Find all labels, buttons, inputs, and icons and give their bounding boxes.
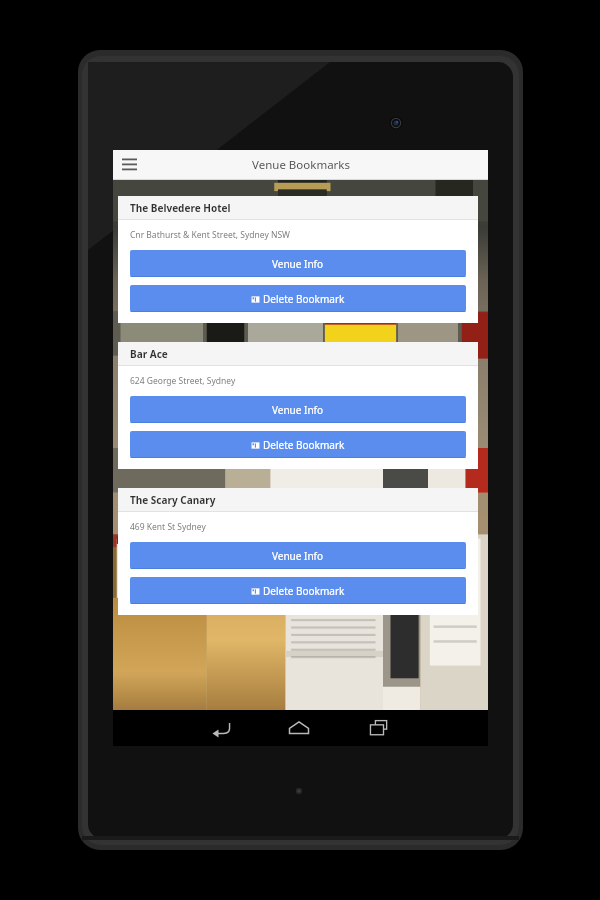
staticText: Venue Info	[272, 257, 324, 271]
button[interactable]: Open navigation menu	[115, 150, 145, 180]
button[interactable]: Venue Info	[130, 250, 466, 277]
staticText: The Scary Canary	[130, 493, 216, 507]
staticText: Venue Info	[272, 549, 324, 563]
staticText: Venue Info	[272, 403, 324, 417]
staticText: Delete Bookmark	[263, 584, 345, 598]
button[interactable]: Venue Info	[130, 396, 466, 423]
staticText: 624 George Street, Sydney	[130, 375, 236, 387]
staticText: The Belvedere Hotel	[130, 201, 231, 215]
staticText: Bar Ace	[130, 347, 168, 361]
staticText: Delete Bookmark	[263, 292, 345, 306]
button[interactable]: Delete Bookmark	[130, 285, 466, 312]
button[interactable]: Delete Bookmark	[130, 577, 466, 604]
staticText: Cnr Bathurst & Kent Street, Sydney NSW	[130, 229, 290, 241]
staticText: Venue Bookmarks	[252, 157, 350, 173]
staticText: 469 Kent St Sydney	[130, 521, 206, 533]
button[interactable]: Delete Bookmark	[130, 431, 466, 458]
staticText: Delete Bookmark	[263, 438, 345, 452]
button[interactable]: Venue Info	[130, 542, 466, 569]
